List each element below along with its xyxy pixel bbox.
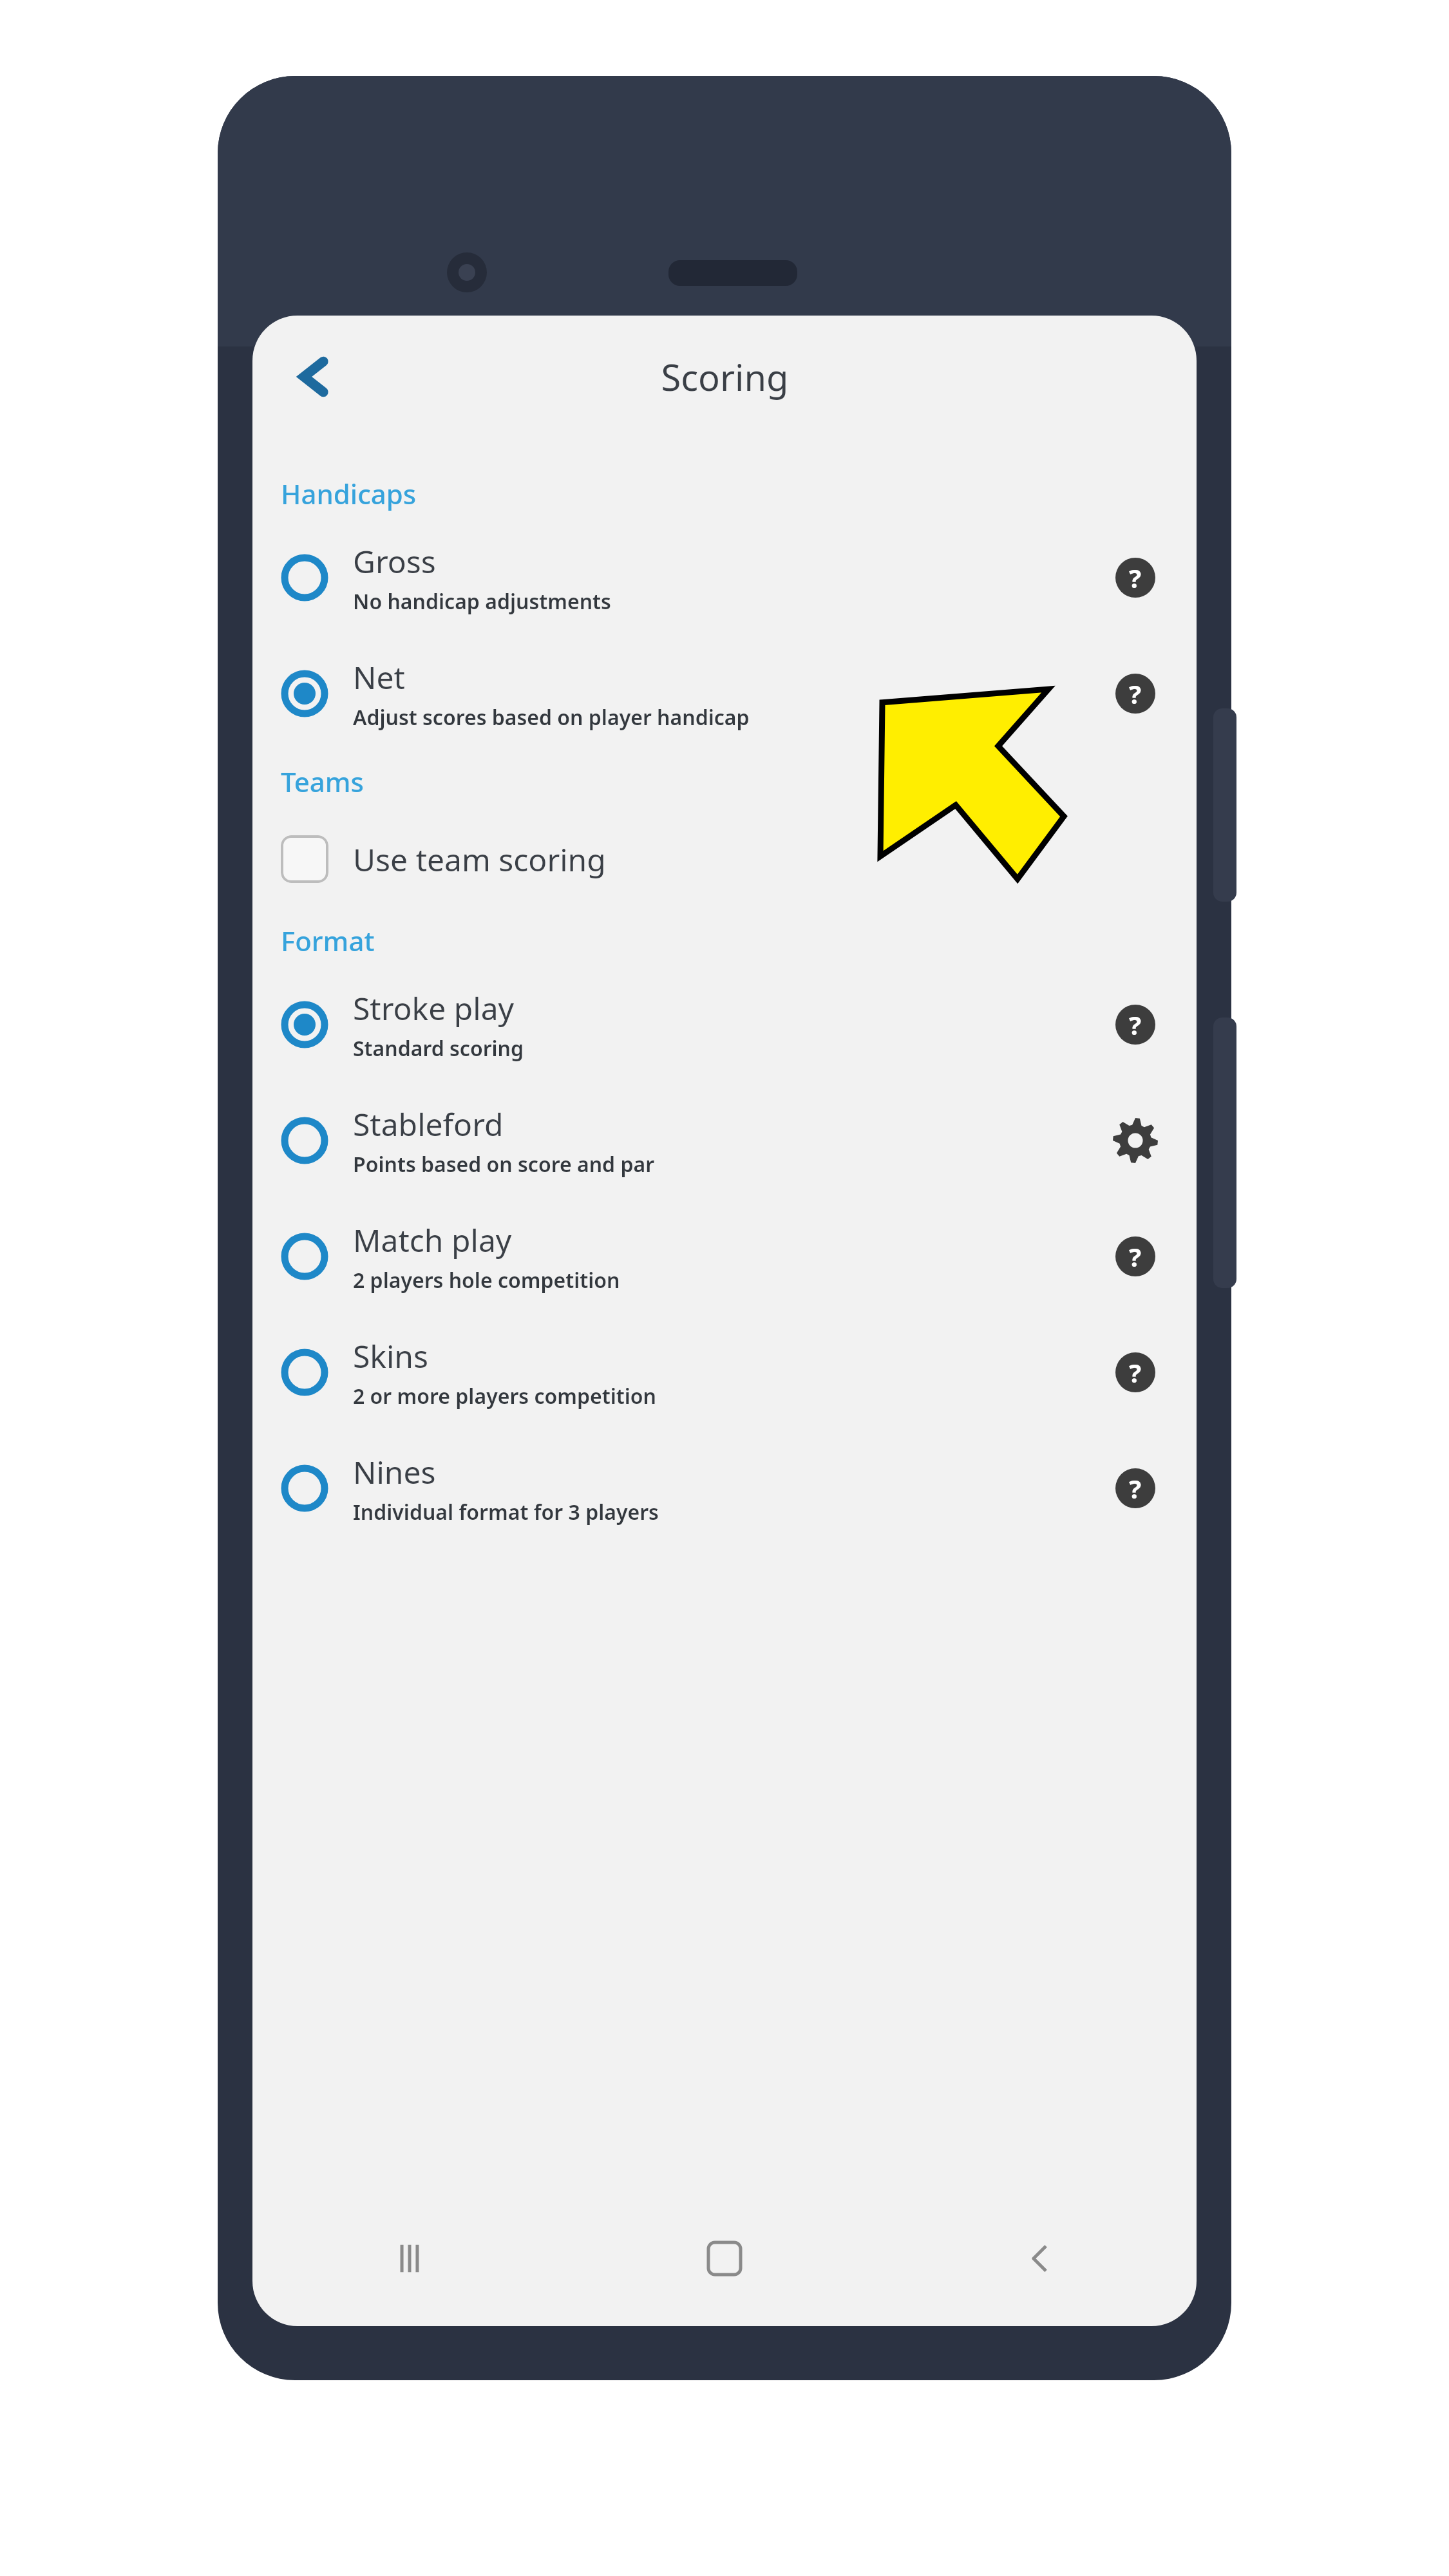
button[interactable]: Help — [1106, 1227, 1164, 1285]
staticText: Use team scoring — [353, 838, 606, 880]
button[interactable]: Home — [567, 2191, 882, 2326]
staticText: ? — [1129, 1239, 1142, 1274]
staticText: ? — [1129, 1471, 1142, 1506]
staticText: ? — [1129, 1007, 1142, 1042]
staticText: ? — [1129, 560, 1142, 595]
staticText: Teams — [281, 763, 364, 800]
button[interactable]: Settings — [1106, 1112, 1164, 1170]
staticText: 2 players hole competition — [353, 1266, 620, 1294]
button[interactable]: Help — [1106, 996, 1164, 1054]
button[interactable]: Help — [1106, 1459, 1164, 1517]
button[interactable]: Match play — [252, 1198, 1197, 1314]
button[interactable]: Gross — [252, 520, 1197, 636]
button[interactable]: Skins — [252, 1314, 1197, 1430]
button[interactable]: Net — [252, 636, 1197, 752]
staticText: 2 or more players competition — [353, 1382, 656, 1410]
button[interactable]: Use team scoring — [252, 808, 1197, 911]
staticText: Adjust scores based on player handicap — [353, 703, 750, 732]
button[interactable]: Back — [882, 2191, 1197, 2326]
staticText: Standard scoring — [353, 1034, 524, 1063]
staticText: Individual format for 3 players — [353, 1498, 659, 1526]
staticText: Net — [353, 656, 405, 698]
button[interactable]: Help — [1106, 549, 1164, 607]
button[interactable]: Help — [1106, 665, 1164, 723]
staticText: Nines — [353, 1451, 436, 1493]
staticText: Stroke play — [353, 987, 515, 1029]
staticText: Scoring — [661, 352, 789, 401]
button[interactable]: Stroke play — [252, 967, 1197, 1083]
staticText: Points based on score and par — [353, 1150, 655, 1179]
staticText: Match play — [353, 1219, 512, 1261]
staticText: Stableford — [353, 1103, 504, 1145]
button[interactable]: Back — [272, 335, 355, 419]
staticText: No handicap adjustments — [353, 587, 611, 616]
button[interactable]: Stableford — [252, 1083, 1197, 1198]
button[interactable]: Recents — [252, 2191, 567, 2326]
button[interactable]: Nines — [252, 1430, 1197, 1546]
staticText: ? — [1129, 1355, 1142, 1390]
staticText: Skins — [353, 1335, 429, 1377]
staticText: Handicaps — [281, 475, 417, 512]
staticText: Format — [281, 922, 375, 959]
staticText: ? — [1129, 676, 1142, 711]
staticText: Gross — [353, 540, 436, 582]
button[interactable]: Help — [1106, 1343, 1164, 1401]
